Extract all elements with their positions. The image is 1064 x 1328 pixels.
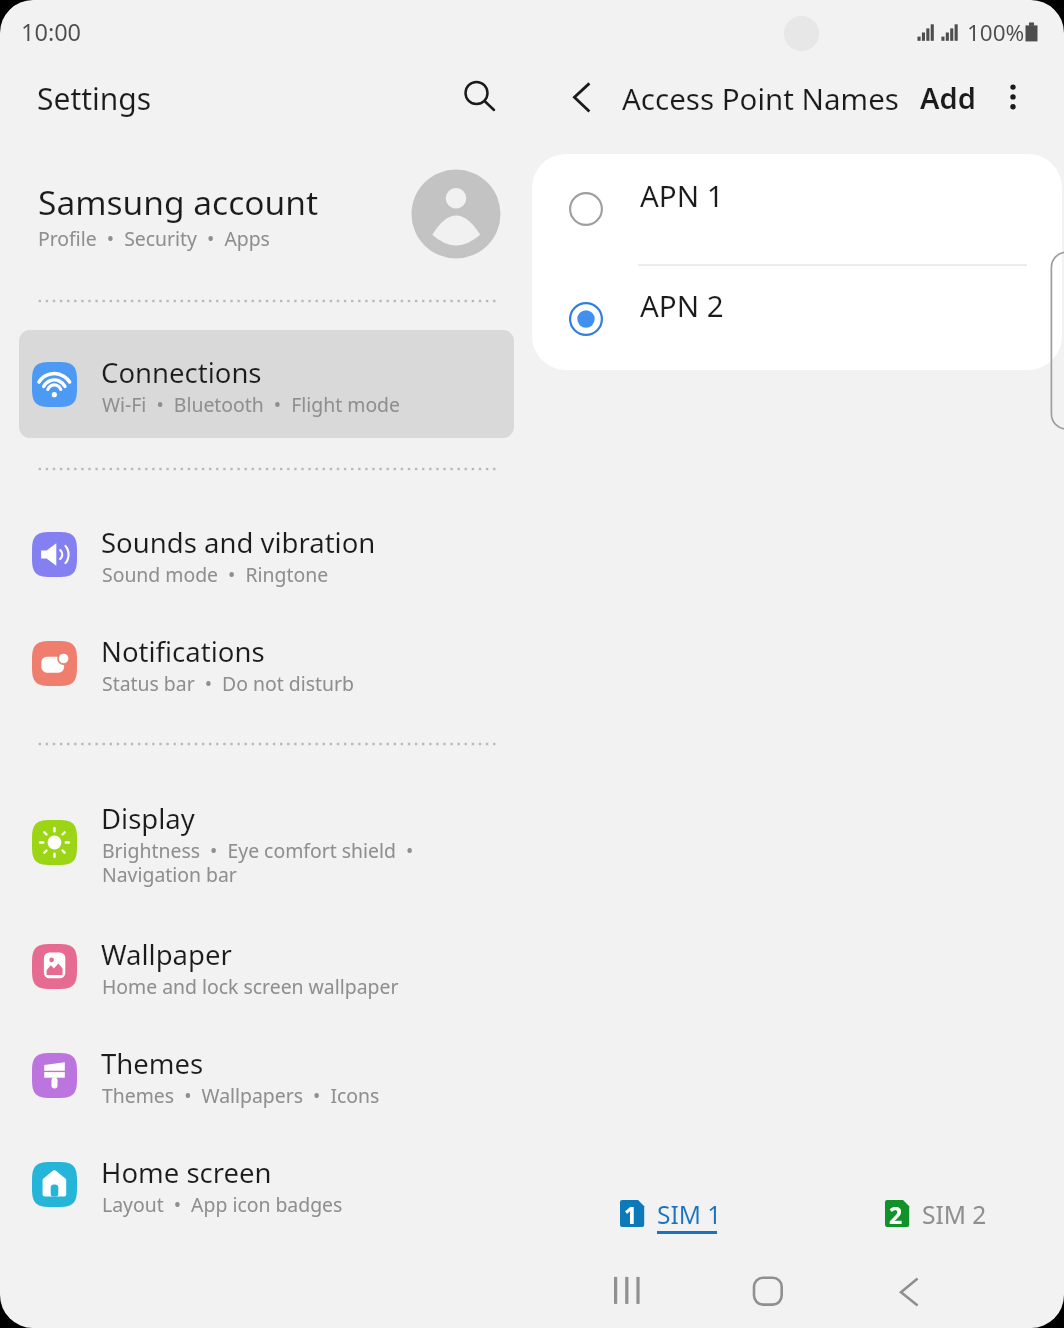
button[interactable]: Home screen <box>0 1130 532 1238</box>
staticText: Notifications <box>101 633 265 670</box>
staticText: SIM 1 <box>657 1198 722 1231</box>
button[interactable]: More options <box>991 75 1035 119</box>
button[interactable]: Sounds and vibration <box>0 500 532 608</box>
staticText: 2 <box>889 1199 903 1230</box>
button[interactable]: APN 2 <box>532 265 1062 369</box>
button[interactable]: Back <box>887 1263 941 1317</box>
button[interactable]: Home <box>741 1263 795 1317</box>
button[interactable]: Display <box>0 774 532 911</box>
staticText: Wallpaper <box>101 936 232 973</box>
button[interactable]: Back <box>558 75 602 119</box>
staticText: Home screen <box>101 1154 272 1191</box>
button[interactable]: Notifications <box>0 609 532 717</box>
staticText: Access Point Names <box>622 78 899 118</box>
button[interactable]: Search <box>456 73 500 117</box>
button[interactable]: 1 <box>620 1192 750 1244</box>
staticText: APN 2 <box>640 285 724 325</box>
staticText: Sounds and vibration <box>101 524 376 561</box>
staticText: Brightness • Eye comfort shield • <box>102 837 414 863</box>
staticText: Connections <box>101 354 262 391</box>
staticText: 100% <box>967 17 1025 48</box>
button[interactable]: Add <box>910 76 966 115</box>
staticText: Samsung account <box>38 179 318 225</box>
staticText: APN 1 <box>640 175 724 215</box>
staticText: Status bar • Do not disturb <box>102 670 354 696</box>
staticText: Home and lock screen wallpaper <box>102 973 399 999</box>
button[interactable]: 2 <box>885 1192 1015 1244</box>
staticText: Profile • Security • Apps <box>38 225 270 251</box>
button[interactable]: Samsung account <box>0 148 532 278</box>
staticText: Display <box>101 800 195 837</box>
staticText: SIM 2 <box>922 1198 987 1231</box>
staticText: Settings <box>37 78 152 119</box>
staticText: Layout • App icon badges <box>102 1191 343 1217</box>
staticText: Navigation bar <box>102 861 237 887</box>
button[interactable]: Wallpaper <box>0 912 532 1020</box>
button[interactable]: APN 1 <box>532 154 1062 264</box>
staticText: 1 <box>624 1199 638 1230</box>
staticText: 10:00 <box>21 16 82 48</box>
button[interactable]: Recent apps <box>600 1263 654 1317</box>
button[interactable]: Connections <box>0 330 532 438</box>
staticText: Sound mode • Ringtone <box>102 561 329 587</box>
staticText: Wi-Fi • Bluetooth • Flight mode <box>102 391 400 417</box>
button[interactable]: Themes <box>0 1021 532 1129</box>
staticText: Themes • Wallpapers • Icons <box>102 1082 380 1108</box>
staticText: Themes <box>101 1045 204 1082</box>
staticText: Add <box>920 78 976 117</box>
